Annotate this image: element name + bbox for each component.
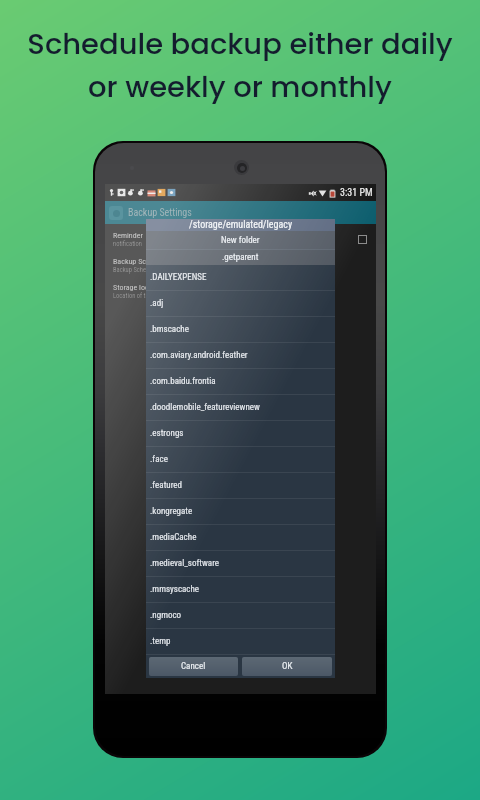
- staticText: .getparent: [222, 252, 259, 263]
- staticText: or weekly or monthly: [88, 67, 392, 108]
- staticText: Backup Settings: [128, 207, 192, 219]
- button[interactable]: .com.aviary.android.feather: [146, 343, 335, 368]
- staticText: Schedule backup either daily: [27, 24, 453, 65]
- staticText: .doodlemobile_featureviewnew: [150, 402, 260, 413]
- button[interactable]: .ngmoco: [146, 603, 335, 628]
- button[interactable]: .face: [146, 447, 335, 472]
- button[interactable]: .kongregate: [146, 499, 335, 524]
- button[interactable]: .mediaCache: [146, 525, 335, 550]
- staticText: Reminder: [113, 231, 143, 240]
- button[interactable]: .bmscache: [146, 317, 335, 342]
- button[interactable]: .estrongs: [146, 421, 335, 446]
- staticText: .medieval_software: [150, 558, 220, 569]
- staticText: Backup Schedule: [113, 266, 157, 274]
- staticText: .featured: [150, 480, 183, 491]
- staticText: OK: [282, 661, 293, 672]
- button[interactable]: OK: [242, 657, 332, 676]
- staticText: /storage/emulated/legacy: [189, 219, 293, 231]
- button[interactable]: Reminder: [105, 226, 376, 252]
- button[interactable]: .featured: [146, 473, 335, 498]
- button[interactable]: .getparent: [146, 250, 335, 265]
- button[interactable]: New folder: [146, 231, 335, 249]
- staticText: .estrongs: [150, 428, 184, 439]
- button[interactable]: .mmsyscache: [146, 577, 335, 602]
- button[interactable]: .DAILYEXPENSE: [146, 265, 335, 290]
- staticText: .adj: [150, 298, 164, 309]
- staticText: .mediaCache: [150, 532, 197, 543]
- staticText: .kongregate: [150, 506, 193, 517]
- staticText: .face: [150, 454, 168, 465]
- staticText: Location of the backup: [113, 292, 172, 300]
- button[interactable]: .medieval_software: [146, 551, 335, 576]
- button[interactable]: Cancel: [149, 657, 238, 676]
- staticText: Cancel: [181, 661, 206, 672]
- staticText: Storage location: [113, 283, 165, 292]
- staticText: New folder: [221, 235, 260, 246]
- button[interactable]: Storage location: [105, 278, 376, 304]
- button[interactable]: .com.baidu.frontia: [146, 369, 335, 394]
- button[interactable]: .temp: [146, 629, 335, 654]
- staticText: .com.aviary.android.feather: [150, 350, 248, 361]
- button[interactable]: .doodlemobile_featureviewnew: [146, 395, 335, 420]
- button[interactable]: Backup Schedule: [105, 252, 376, 278]
- staticText: .mmsyscache: [150, 584, 200, 595]
- staticText: .com.baidu.frontia: [150, 376, 216, 387]
- button[interactable]: .adj: [146, 291, 335, 316]
- staticText: .DAILYEXPENSE: [150, 272, 207, 283]
- staticText: .temp: [150, 636, 171, 647]
- staticText: 3:31 PM: [340, 187, 373, 199]
- staticText: .bmscache: [150, 324, 189, 335]
- staticText: Backup Schedule: [113, 257, 168, 266]
- staticText: .ngmoco: [150, 610, 182, 621]
- staticText: notification: [113, 240, 142, 248]
